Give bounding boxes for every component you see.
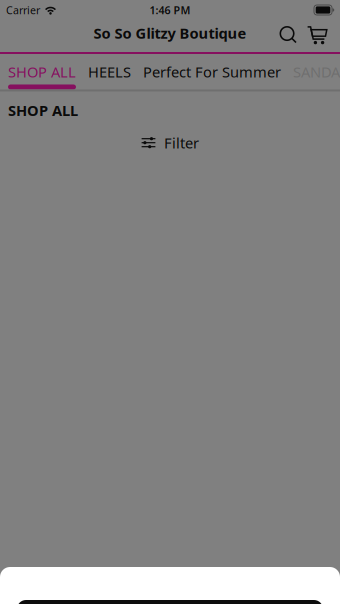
button[interactable]: Filter	[135, 127, 205, 158]
staticText: So So Glitzy Boutique	[93, 23, 246, 43]
staticText: 1:46 PM	[149, 3, 190, 17]
staticText: SHOP ALL	[8, 62, 76, 81]
staticText: SANDALS	[293, 62, 340, 81]
staticText: Carrier	[6, 3, 40, 17]
staticText: Filter	[164, 133, 199, 152]
staticText: Perfect For Summer	[143, 62, 281, 81]
button[interactable]: Search	[273, 20, 303, 49]
staticText: SHOP ALL	[8, 100, 78, 120]
staticText: HEELS	[88, 62, 131, 81]
button[interactable]: SANDALS	[287, 54, 340, 89]
button[interactable]: Shopping cart	[303, 20, 331, 49]
button[interactable]: Perfect For Summer	[137, 54, 287, 89]
button[interactable]: SHOP ALL	[2, 54, 82, 89]
button[interactable]: HEELS	[82, 54, 137, 89]
button[interactable]: Apply	[0, 567, 340, 604]
